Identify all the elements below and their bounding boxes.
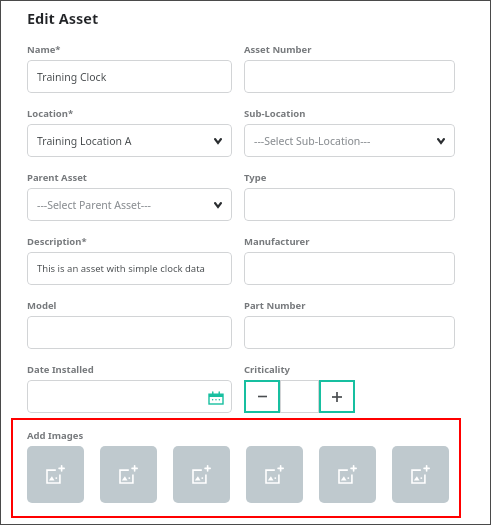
button[interactable] xyxy=(244,188,455,221)
button[interactable]: Training Location A xyxy=(27,124,232,157)
staticText: Parent Asset xyxy=(27,171,87,184)
button[interactable]: Add image xyxy=(27,446,84,503)
staticText: Description* xyxy=(27,235,87,248)
button[interactable]: ---Select Sub-Location--- xyxy=(244,124,455,157)
button[interactable]: Increase criticality xyxy=(319,380,355,413)
button[interactable]: Add image xyxy=(319,446,376,503)
button[interactable] xyxy=(244,252,455,285)
staticText: Training Location A xyxy=(37,134,132,148)
button[interactable]: Add image xyxy=(173,446,230,503)
button[interactable]: Add image xyxy=(246,446,303,503)
staticText: Edit Asset xyxy=(27,8,99,28)
staticText: Date Installed xyxy=(27,363,94,376)
button[interactable] xyxy=(244,60,455,93)
staticText: Criticality xyxy=(244,363,290,376)
staticText: ---Select Sub-Location--- xyxy=(254,134,371,148)
staticText: Sub-Location xyxy=(244,107,306,120)
staticText: Location* xyxy=(27,107,74,120)
staticText: Training Clock xyxy=(37,70,107,84)
button[interactable]: Training Clock xyxy=(27,60,232,93)
button[interactable]: Add image xyxy=(100,446,157,503)
staticText: Model xyxy=(27,299,57,312)
button[interactable]: Pick date xyxy=(27,380,232,413)
button[interactable]: This is an asset with simple clock data xyxy=(27,252,232,285)
button[interactable] xyxy=(244,316,455,349)
button[interactable]: Decrease criticality xyxy=(244,380,280,413)
staticText: Type xyxy=(244,171,267,184)
staticText: Manufacturer xyxy=(244,235,310,248)
staticText: ---Select Parent Asset--- xyxy=(37,198,151,212)
button[interactable] xyxy=(27,316,232,349)
staticText: Add Images xyxy=(27,429,84,442)
staticText: Asset Number xyxy=(244,43,312,56)
button[interactable]: Add image xyxy=(392,446,449,503)
button[interactable]: ---Select Parent Asset--- xyxy=(27,188,232,221)
staticText: Name* xyxy=(27,43,61,56)
staticText: Part Number xyxy=(244,299,306,312)
staticText: This is an asset with simple clock data xyxy=(37,262,205,275)
